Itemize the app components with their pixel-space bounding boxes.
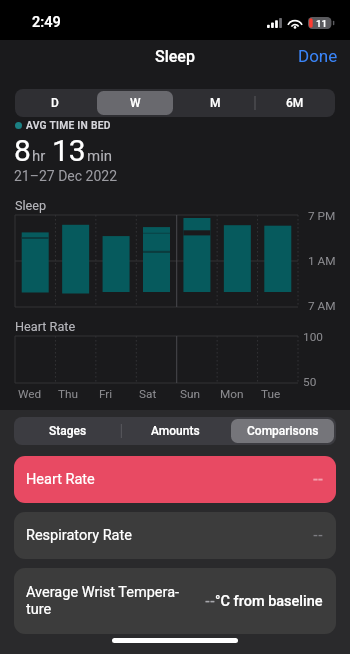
staticText: 13 [52, 133, 86, 168]
staticText: Sun [180, 387, 201, 401]
staticText: Tue [261, 387, 281, 401]
button[interactable]: Stages [16, 419, 120, 443]
button[interactable]: Heart Rate [14, 456, 336, 503]
button[interactable]: Done [284, 39, 350, 73]
button[interactable]: Amounts [124, 419, 227, 443]
staticText: Amounts [151, 424, 200, 438]
staticText: Heart Rate [15, 319, 76, 334]
staticText: 11 [316, 18, 327, 29]
button[interactable]: M [177, 91, 253, 115]
staticText: D [51, 96, 59, 110]
staticText: Heart Rate [26, 471, 95, 488]
staticText: W [130, 96, 141, 110]
button[interactable]: 6M [257, 91, 333, 115]
staticText: -- [313, 527, 323, 544]
button[interactable]: Average Wrist Tempera- ture [14, 568, 336, 634]
staticText: Sat [139, 387, 157, 401]
staticText: -- [205, 593, 215, 610]
staticText: 6M [286, 96, 304, 110]
button[interactable]: D [17, 91, 93, 115]
staticText: 7 AM [308, 299, 336, 313]
staticText: M [210, 96, 221, 110]
staticText: hr [32, 147, 46, 165]
staticText: AVG TIME IN BED [26, 119, 111, 131]
staticText: Sleep [15, 198, 47, 213]
staticText: 1 AM [308, 254, 336, 268]
staticText: 21–27 Dec 2022 [14, 168, 118, 184]
button[interactable]: Comparisons [231, 419, 334, 443]
staticText: Sleep [155, 47, 195, 66]
staticText: Comparisons [247, 424, 319, 438]
staticText: -- [313, 471, 323, 488]
staticText: min [87, 147, 113, 165]
staticText: Wed [18, 387, 42, 401]
button[interactable]: Respiratory Rate [14, 512, 336, 559]
staticText: Average Wrist Tempera- ture [26, 584, 180, 618]
staticText: 50 [303, 375, 317, 389]
staticText: Done [298, 46, 338, 66]
staticText: Mon [220, 387, 244, 401]
staticText: Fri [99, 387, 113, 401]
staticText: Stages [49, 424, 87, 438]
staticText: 100 [303, 330, 323, 344]
staticText: 7 PM [308, 209, 336, 223]
button[interactable]: W [97, 91, 173, 115]
staticText: Respiratory Rate [26, 527, 132, 544]
staticText: 8 [14, 133, 31, 168]
staticText: °C from baseline [215, 593, 323, 610]
staticText: Thu [58, 387, 79, 401]
staticText: 2:49 [32, 14, 61, 31]
